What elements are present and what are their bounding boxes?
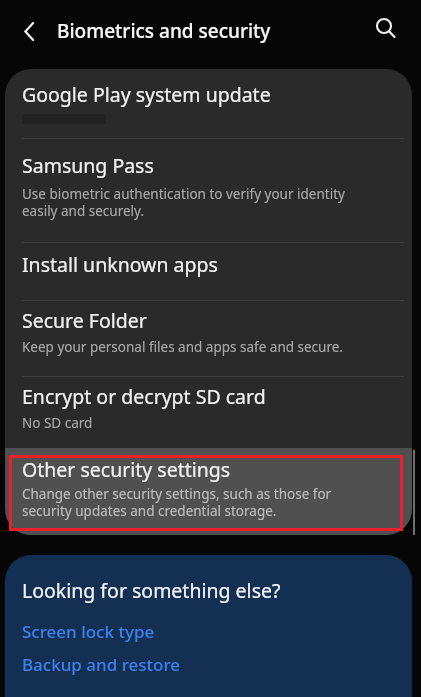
staticText: Secure Folder (22, 307, 147, 334)
staticText: Other security settings (22, 456, 231, 483)
staticText: Install unknown apps (22, 251, 218, 278)
staticText: Screen lock type (22, 620, 155, 643)
button[interactable]: Encrypt or decrypt SD card (5, 377, 412, 448)
staticText: Looking for something else? (22, 577, 281, 604)
button[interactable]: Other security settings (5, 448, 412, 535)
staticText: No SD card (22, 414, 93, 432)
button[interactable]: Screen lock type (22, 620, 155, 643)
staticText: Biometrics and security (57, 18, 271, 44)
staticText: Change other security settings, such as … (22, 485, 332, 520)
staticText: Keep your personal files and apps safe a… (22, 338, 343, 356)
button[interactable]: Install unknown apps (5, 243, 412, 300)
button[interactable]: Secure Folder (5, 301, 412, 376)
staticText: Samsung Pass (22, 152, 154, 179)
button[interactable] (14, 16, 44, 46)
button[interactable]: Google Play system update (5, 69, 412, 138)
button[interactable]: Backup and restore (22, 653, 181, 676)
button[interactable]: Samsung Pass (5, 139, 412, 242)
staticText: Encrypt or decrypt SD card (22, 383, 266, 410)
staticText: Google Play system update (22, 81, 271, 108)
staticText: Use biometric authentication to verify y… (22, 185, 345, 220)
button[interactable] (368, 11, 404, 47)
staticText: Backup and restore (22, 653, 181, 676)
